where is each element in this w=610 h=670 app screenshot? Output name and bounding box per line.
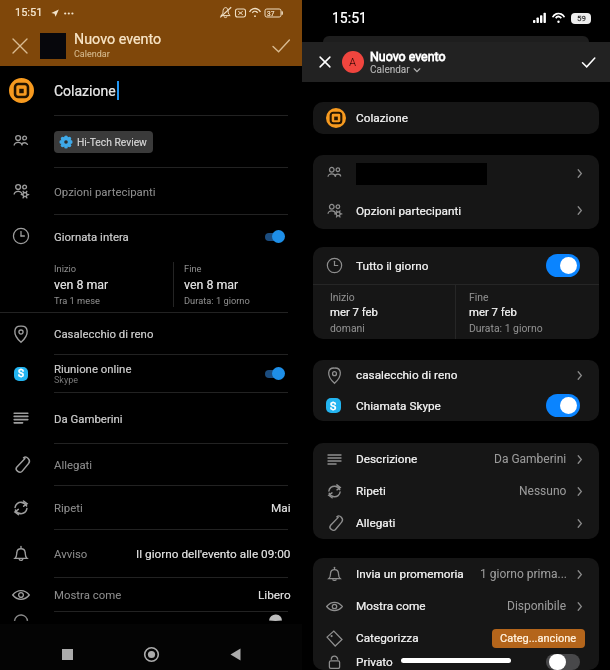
staticText: Descrizione [356, 452, 418, 466]
staticText: Opzioni partecipanti [356, 204, 462, 218]
staticText: Hi-Tech Review [77, 136, 147, 148]
staticText: ven 8 mar [184, 277, 239, 292]
staticText: Calendar [370, 64, 410, 76]
button[interactable]: Hi-Tech Review [0, 116, 302, 167]
staticText: Colazione [54, 83, 116, 99]
button[interactable] [313, 155, 599, 192]
staticText: Disponibile [507, 599, 567, 613]
button[interactable]: Tutto il giorno [313, 247, 599, 284]
staticText: Inizio [54, 263, 77, 274]
staticText: A [349, 56, 357, 69]
button[interactable]: Close [312, 49, 338, 75]
staticText: Fine [469, 291, 489, 303]
button[interactable]: Home [134, 638, 168, 670]
button[interactable]: Descrizione [313, 443, 599, 475]
staticText: Opzioni partecipanti [54, 185, 156, 198]
staticText: Durata: 1 giorno [469, 322, 543, 334]
button[interactable]: Privato [313, 654, 599, 670]
button[interactable]: Giornata intera [0, 215, 302, 257]
staticText: Fine [184, 263, 202, 274]
button[interactable]: Opzioni partecipanti [0, 168, 302, 214]
staticText: Calendar [74, 49, 110, 60]
staticText: ven 8 mar [54, 277, 109, 292]
staticText: Nuovo evento [74, 31, 162, 48]
button[interactable]: Allegati [0, 444, 302, 485]
button[interactable]: S [0, 355, 302, 392]
button[interactable]: S [313, 390, 599, 421]
staticText: Libero [258, 588, 291, 602]
staticText: 37 [267, 10, 275, 18]
button[interactable]: Ripeti [0, 486, 302, 529]
button[interactable]: Colazione [0, 66, 302, 115]
button[interactable]: Recents [50, 638, 84, 670]
staticText: Chiamata Skype [356, 399, 441, 413]
button[interactable]: Invia un promemoria [313, 558, 599, 590]
button[interactable]: Ripeti [313, 475, 599, 507]
staticText: Tra 1 mese [54, 295, 100, 306]
button[interactable]: Casalecchio di reno [0, 313, 302, 354]
staticText: Mostra come [54, 588, 122, 601]
staticText: Categ...ancione [500, 632, 577, 645]
button[interactable]: Inizio [54, 257, 173, 312]
button[interactable]: Save [260, 25, 302, 66]
staticText: Nessuno [519, 484, 567, 498]
button[interactable]: Da Gamberini [0, 393, 302, 443]
button[interactable]: Close [0, 25, 40, 66]
staticText: Mostra come [356, 599, 426, 613]
staticText: 1 giorno prima... [480, 567, 567, 581]
staticText: Inizio [330, 291, 355, 303]
staticText: Categorizza [356, 631, 419, 645]
button[interactable]: Inizio [313, 285, 455, 339]
staticText: Ripeti [54, 501, 83, 514]
staticText: Nuovo evento [370, 49, 446, 64]
staticText: Riunione online [54, 362, 132, 375]
button[interactable]: Avviso [0, 530, 302, 577]
button[interactable]: Mostra come [0, 578, 302, 611]
staticText: mer 7 feb [469, 306, 517, 319]
staticText: Durata: 1 giorno [184, 295, 250, 306]
staticText: domani [330, 322, 365, 334]
staticText: Mai [271, 501, 291, 515]
staticText: Ripeti [356, 484, 386, 498]
staticText: Il giorno dell'evento alle 09:00 [136, 547, 291, 561]
staticText: Giornata intera [54, 230, 129, 243]
staticText: Invia un promemoria [356, 567, 464, 581]
staticText: Tutto il giorno [356, 259, 429, 273]
staticText: Privato [356, 655, 393, 669]
button[interactable]: Back [218, 638, 252, 670]
staticText: Da Gamberini [54, 412, 123, 425]
staticText: mer 7 feb [330, 306, 378, 319]
staticText: Colazione [356, 111, 408, 125]
button[interactable]: casalecchio di reno [313, 360, 599, 390]
staticText: 15:51 [15, 6, 43, 19]
staticText: Da Gamberini [494, 452, 567, 466]
button[interactable]: Colazione [313, 102, 599, 134]
staticText: casalecchio di reno [356, 368, 458, 382]
button[interactable]: Opzioni partecipanti [313, 192, 599, 229]
button[interactable]: Categorizza [313, 622, 599, 654]
staticText: Allegati [356, 516, 396, 530]
button[interactable]: Mostra come [313, 590, 599, 622]
button[interactable]: Fine [184, 257, 302, 312]
staticText: 15:51 [332, 10, 367, 26]
staticText: S [330, 400, 337, 412]
button[interactable]: Save [575, 49, 601, 75]
button[interactable]: Fine [456, 285, 599, 339]
staticText: Skype [54, 375, 78, 386]
staticText: S [18, 368, 24, 380]
button[interactable]: Allegati [313, 507, 599, 539]
staticText: Avviso [54, 547, 88, 560]
staticText: Casalecchio di reno [54, 327, 154, 340]
staticText: 59 [577, 14, 586, 23]
staticText: Allegati [54, 458, 93, 471]
